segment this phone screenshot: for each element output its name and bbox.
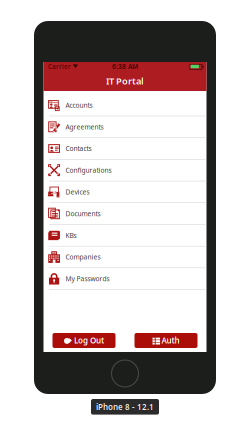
staticText: Accounts bbox=[65, 101, 92, 110]
staticText: Log Out bbox=[74, 335, 104, 346]
staticText: Agreements bbox=[65, 122, 103, 131]
button[interactable]: Devices bbox=[43, 181, 206, 203]
button[interactable]: Log Out bbox=[52, 333, 115, 348]
button[interactable]: Agreements bbox=[43, 116, 206, 138]
staticText: IT Portal bbox=[106, 75, 144, 87]
button[interactable]: My Passwords bbox=[43, 268, 206, 290]
button[interactable]: Auth bbox=[134, 333, 197, 348]
staticText: Devices bbox=[65, 187, 89, 196]
button[interactable]: Accounts bbox=[43, 94, 206, 116]
staticText: Configurations bbox=[65, 166, 111, 175]
staticText: Auth bbox=[161, 335, 179, 346]
staticText: Contacts bbox=[65, 144, 91, 153]
button[interactable]: KBs bbox=[43, 225, 206, 246]
button[interactable]: Configurations bbox=[43, 160, 206, 181]
staticText: 6:38 AM bbox=[112, 62, 138, 71]
staticText: Carrier bbox=[48, 62, 71, 71]
staticText: Documents bbox=[65, 209, 100, 218]
staticText: KBs bbox=[65, 231, 76, 240]
button[interactable]: Contacts bbox=[43, 138, 206, 160]
staticText: Companies bbox=[65, 253, 100, 261]
staticText: iPhone 8 - 12.1 bbox=[96, 401, 154, 412]
button[interactable]: Companies bbox=[43, 246, 206, 268]
staticText: My Passwords bbox=[65, 274, 109, 283]
button[interactable]: Documents bbox=[43, 203, 206, 225]
